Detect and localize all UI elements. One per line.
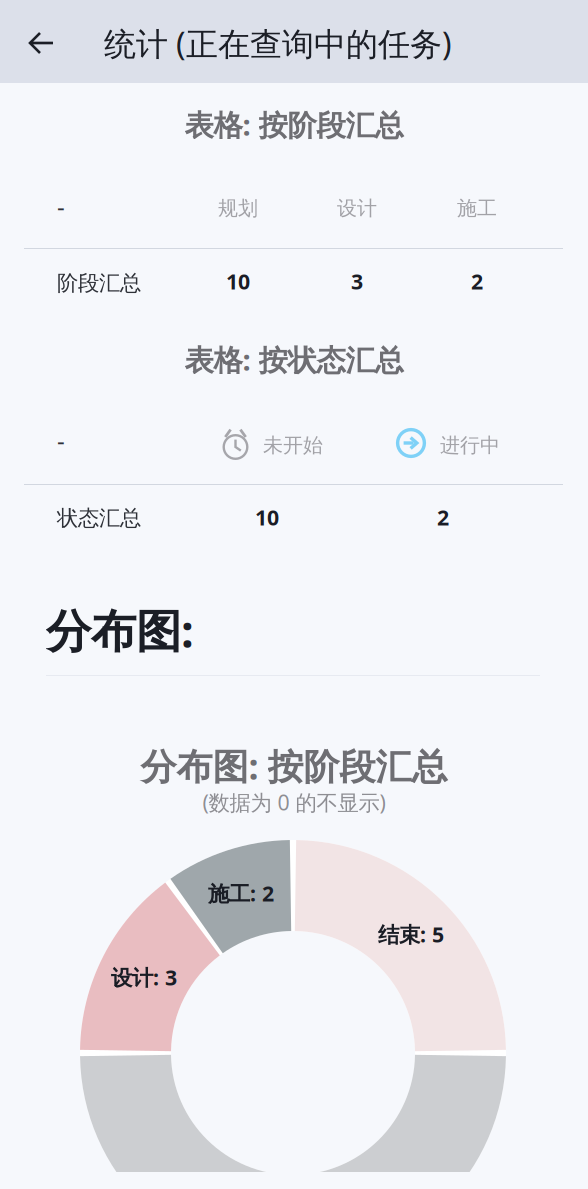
staticText: - <box>57 424 65 456</box>
staticText: 表格: 按状态汇总 <box>184 340 403 379</box>
staticText: 设计 <box>337 196 377 221</box>
staticText: 规划 <box>218 196 258 221</box>
staticText: 未开始 <box>263 433 323 458</box>
staticText: 阶段汇总 <box>57 270 141 296</box>
staticText: 分布图: 按阶段汇总 <box>140 742 447 790</box>
staticText: 设计: 3 <box>111 963 177 991</box>
staticText: 分布图: <box>46 600 194 660</box>
staticText: 统计 (正在查询中的任务) <box>104 22 452 64</box>
button[interactable]: Back <box>8 10 74 76</box>
staticText: - <box>57 190 65 222</box>
staticText: 3 <box>351 267 363 295</box>
staticText: 施工: 2 <box>208 879 274 907</box>
staticText: (数据为 0 的不显示) <box>202 788 385 816</box>
staticText: 结束: 5 <box>378 920 444 948</box>
staticText: 施工 <box>457 196 497 221</box>
staticText: 进行中 <box>440 433 500 458</box>
staticText: 10 <box>255 503 279 531</box>
staticText: 2 <box>437 503 449 531</box>
staticText: 10 <box>226 267 250 295</box>
staticText: 状态汇总 <box>57 505 141 531</box>
staticText: 表格: 按阶段汇总 <box>184 105 403 144</box>
staticText: 2 <box>471 267 483 295</box>
